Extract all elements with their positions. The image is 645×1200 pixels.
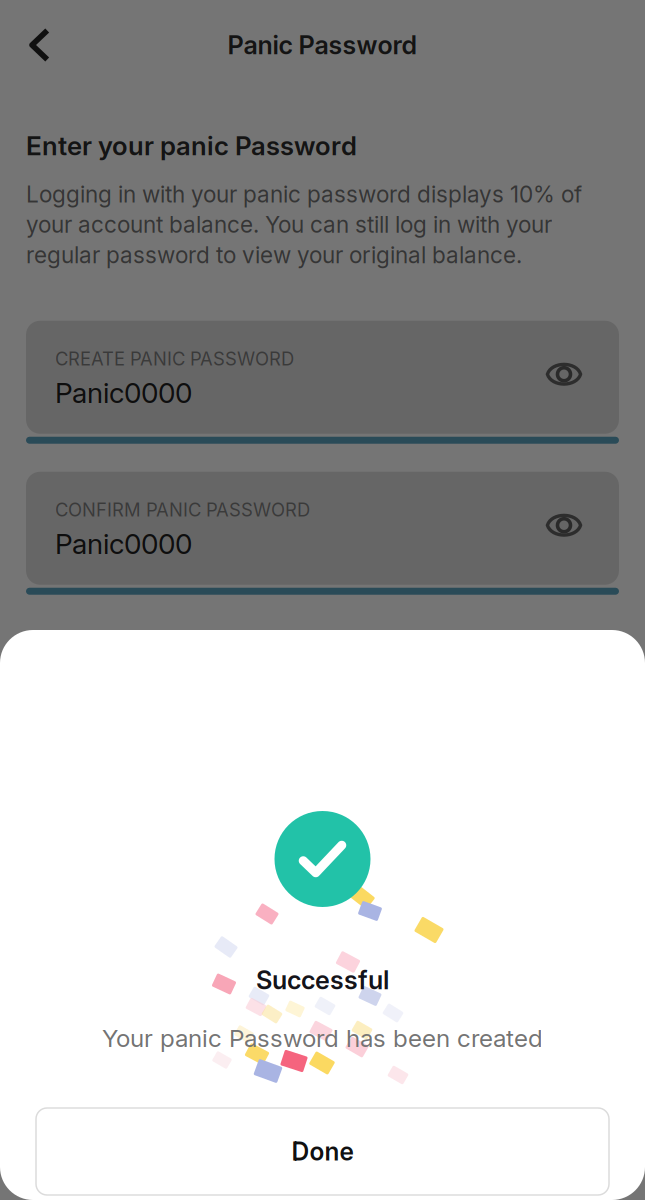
- button[interactable]: Show password: [536, 497, 592, 553]
- staticText: CONFIRM PANIC PASSWORD: [55, 499, 310, 521]
- staticText: Successful: [256, 965, 389, 995]
- button[interactable]: Back: [26, 13, 72, 76]
- staticText: Enter your panic Password: [26, 130, 357, 161]
- button[interactable]: Done: [36, 1108, 609, 1195]
- staticText: Logging in with your panic password disp…: [26, 180, 582, 269]
- button[interactable]: Show password: [536, 346, 592, 402]
- staticText: Your panic Password has been created: [102, 1023, 543, 1053]
- staticText: CREATE PANIC PASSWORD: [55, 348, 294, 370]
- staticText: Panic0000: [55, 527, 192, 561]
- staticText: Panic Password: [227, 30, 417, 60]
- staticText: Panic0000: [55, 376, 192, 410]
- staticText: Done: [291, 1137, 353, 1166]
